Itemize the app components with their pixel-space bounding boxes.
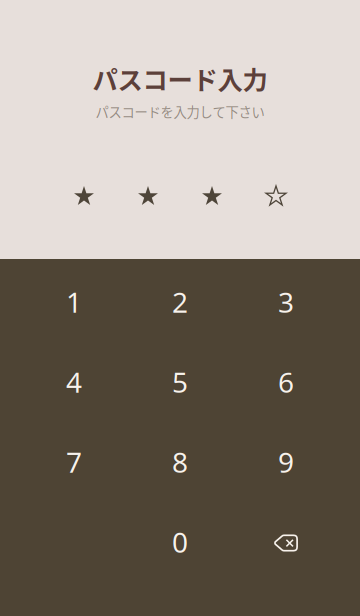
- button[interactable]: 1: [21, 262, 127, 342]
- staticText: 8: [172, 443, 188, 481]
- staticText: パスコードを入力して下さい: [95, 102, 264, 121]
- button[interactable]: 9: [233, 422, 339, 502]
- staticText: 9: [278, 443, 294, 481]
- button[interactable]: 2: [127, 262, 233, 342]
- staticText: 5: [172, 363, 188, 401]
- button[interactable]: 7: [21, 422, 127, 502]
- staticText: 7: [66, 443, 82, 481]
- staticText: 2: [172, 283, 188, 321]
- staticText: 3: [278, 283, 294, 321]
- button[interactable]: 6: [233, 342, 339, 422]
- staticText: 1: [66, 283, 82, 321]
- button[interactable]: 4: [21, 342, 127, 422]
- button[interactable]: Delete: [233, 502, 339, 582]
- staticText: 6: [278, 363, 294, 401]
- staticText: 0: [172, 523, 188, 561]
- button[interactable]: 0: [127, 502, 233, 582]
- button[interactable]: 3: [233, 262, 339, 342]
- staticText: パスコード入力: [92, 60, 267, 97]
- button[interactable]: 5: [127, 342, 233, 422]
- button[interactable]: 8: [127, 422, 233, 502]
- staticText: 4: [66, 363, 82, 401]
